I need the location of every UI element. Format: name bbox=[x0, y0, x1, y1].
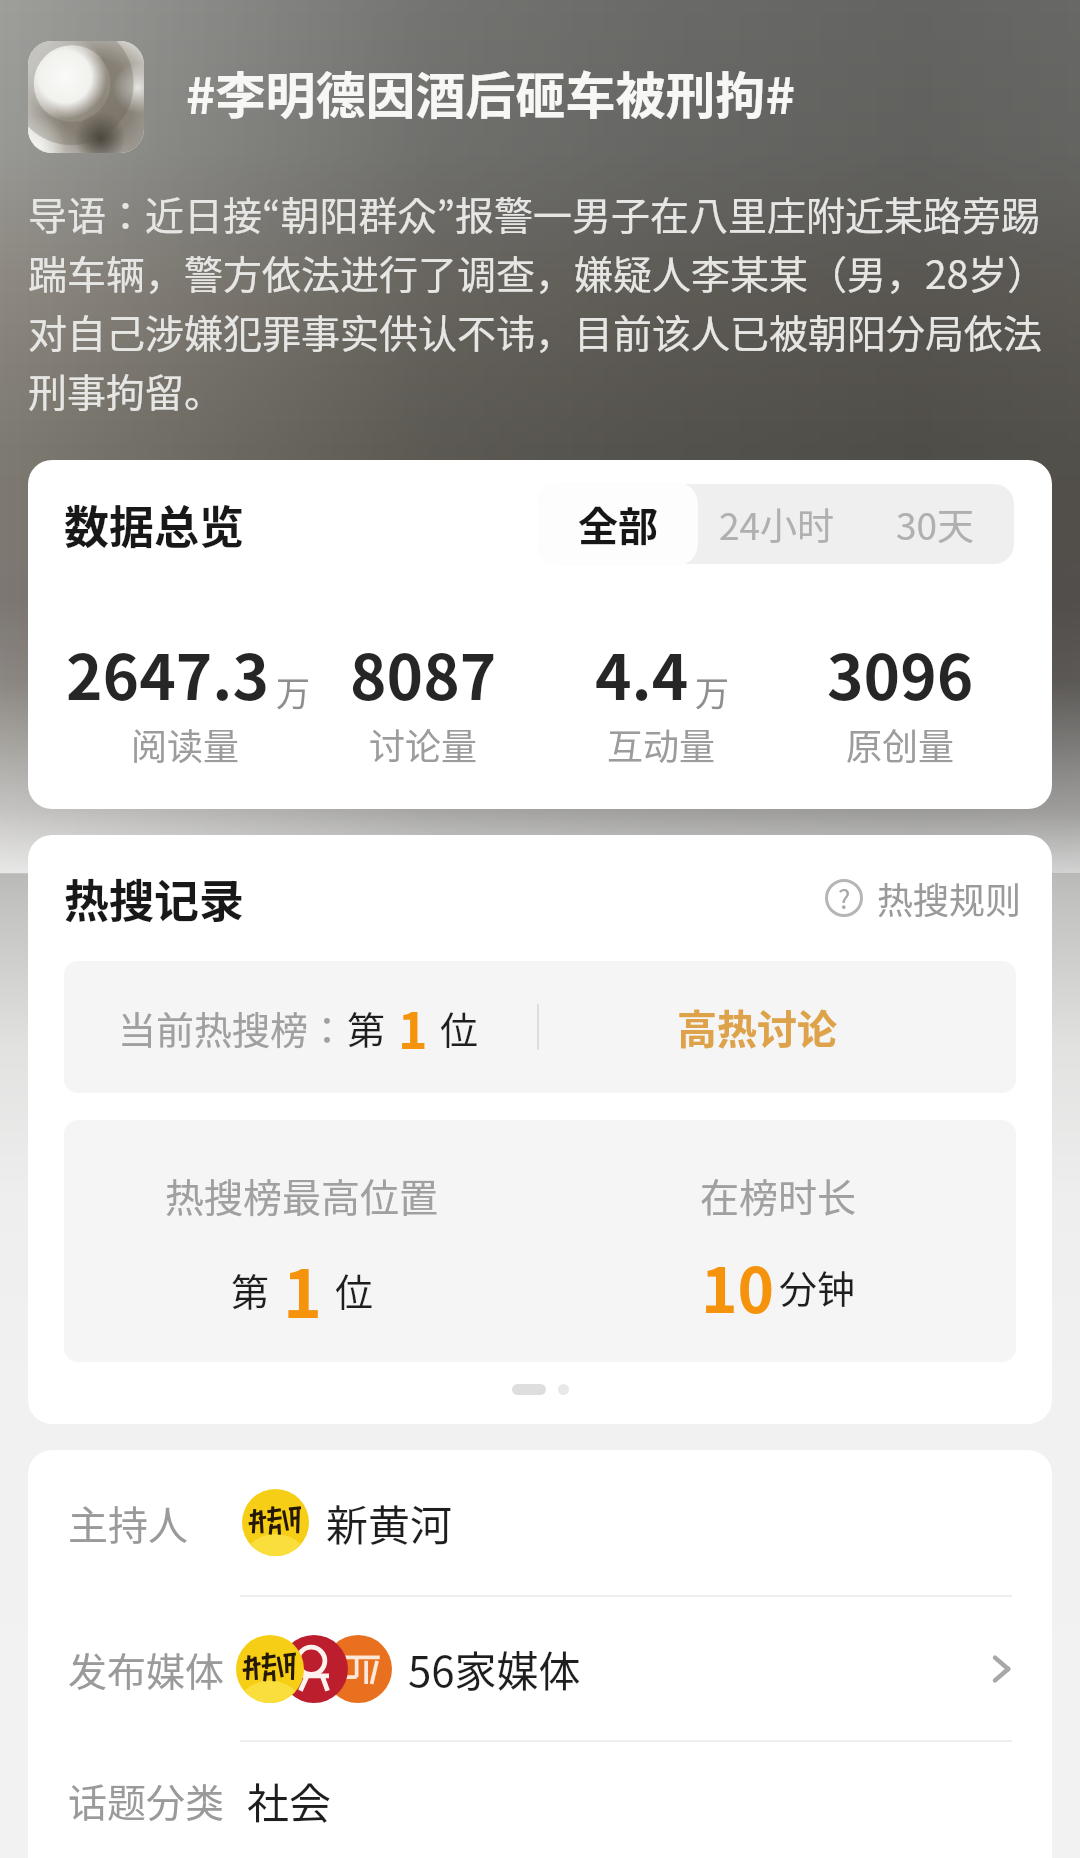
staticText: 位 bbox=[335, 1262, 374, 1317]
staticText: 热搜榜最高位置 bbox=[165, 1167, 439, 1223]
staticText: 社会 bbox=[247, 1770, 332, 1831]
staticText: 话题分类 bbox=[68, 1772, 225, 1828]
staticText: 原创量 bbox=[846, 718, 955, 770]
staticText: 新黄河 bbox=[326, 1492, 453, 1553]
button[interactable]: 发布媒体 bbox=[28, 1597, 1052, 1740]
button[interactable]: ? bbox=[825, 872, 1052, 924]
staticText: 万 bbox=[695, 667, 729, 716]
staticText: 发布媒体 bbox=[68, 1641, 225, 1697]
staticText: 导语：近日接“朝阳群众”报警一男子在八里庄附近某路旁踢踹车辆，警方依法进行了调查… bbox=[28, 185, 1058, 418]
staticText: #李明德因酒后砸车被刑拘# bbox=[186, 56, 795, 128]
staticText: 位 bbox=[440, 1000, 479, 1055]
staticText: 第 bbox=[231, 1262, 270, 1317]
staticText: 高热讨论 bbox=[677, 998, 837, 1056]
staticText: 10 bbox=[701, 1241, 775, 1331]
staticText: 3096 bbox=[827, 628, 974, 718]
staticText: 当前热搜榜： bbox=[118, 1000, 347, 1055]
staticText: 主持人 bbox=[68, 1494, 188, 1552]
staticText: 24小时 bbox=[719, 497, 835, 551]
other: 查看媒体列表 bbox=[986, 1654, 1016, 1684]
staticText: 30天 bbox=[896, 497, 975, 551]
staticText: 热搜规则 bbox=[877, 872, 1022, 924]
staticText: 第 bbox=[347, 1000, 386, 1055]
staticText: 讨论量 bbox=[369, 718, 478, 770]
staticText: 热搜记录 bbox=[64, 866, 245, 931]
staticText: 4.4 bbox=[595, 628, 689, 718]
button[interactable]: 全部 bbox=[538, 482, 698, 566]
staticText: 互动量 bbox=[607, 718, 716, 770]
staticText: 56家媒体 bbox=[408, 1638, 581, 1699]
button[interactable]: 24小时 bbox=[698, 482, 856, 566]
staticText: 全部 bbox=[578, 495, 658, 553]
staticText: 2647.3 bbox=[66, 628, 270, 718]
staticText: 阅读量 bbox=[131, 718, 240, 770]
staticText: 1 bbox=[283, 1241, 322, 1337]
staticText: 1 bbox=[398, 991, 428, 1063]
staticText: 数据总览 bbox=[64, 492, 245, 557]
staticText: 分钟 bbox=[779, 1259, 856, 1314]
button[interactable]: 主持人 bbox=[28, 1450, 1052, 1595]
staticText: 在榜时长 bbox=[700, 1167, 857, 1223]
staticText: ? bbox=[838, 879, 851, 917]
staticText: 万 bbox=[276, 667, 304, 716]
staticText: 8087 bbox=[350, 628, 497, 718]
button[interactable]: 30天 bbox=[856, 482, 1014, 566]
